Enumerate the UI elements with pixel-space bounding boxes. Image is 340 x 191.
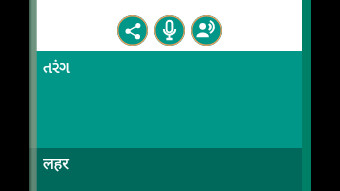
button[interactable]: Listen [191, 15, 222, 46]
button[interactable]: लहर [29, 148, 302, 191]
staticText: लहर [43, 152, 69, 174]
button[interactable]: Share [117, 15, 148, 46]
button[interactable]: Voice input [154, 15, 185, 46]
button[interactable]: તરંગ [29, 51, 302, 148]
staticText: તરંગ [43, 56, 70, 78]
